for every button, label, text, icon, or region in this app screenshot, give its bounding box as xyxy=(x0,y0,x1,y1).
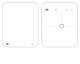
button[interactable]: Back xyxy=(43,7,50,12)
button[interactable]: Menu xyxy=(4,41,11,46)
button[interactable]: More xyxy=(29,42,35,47)
